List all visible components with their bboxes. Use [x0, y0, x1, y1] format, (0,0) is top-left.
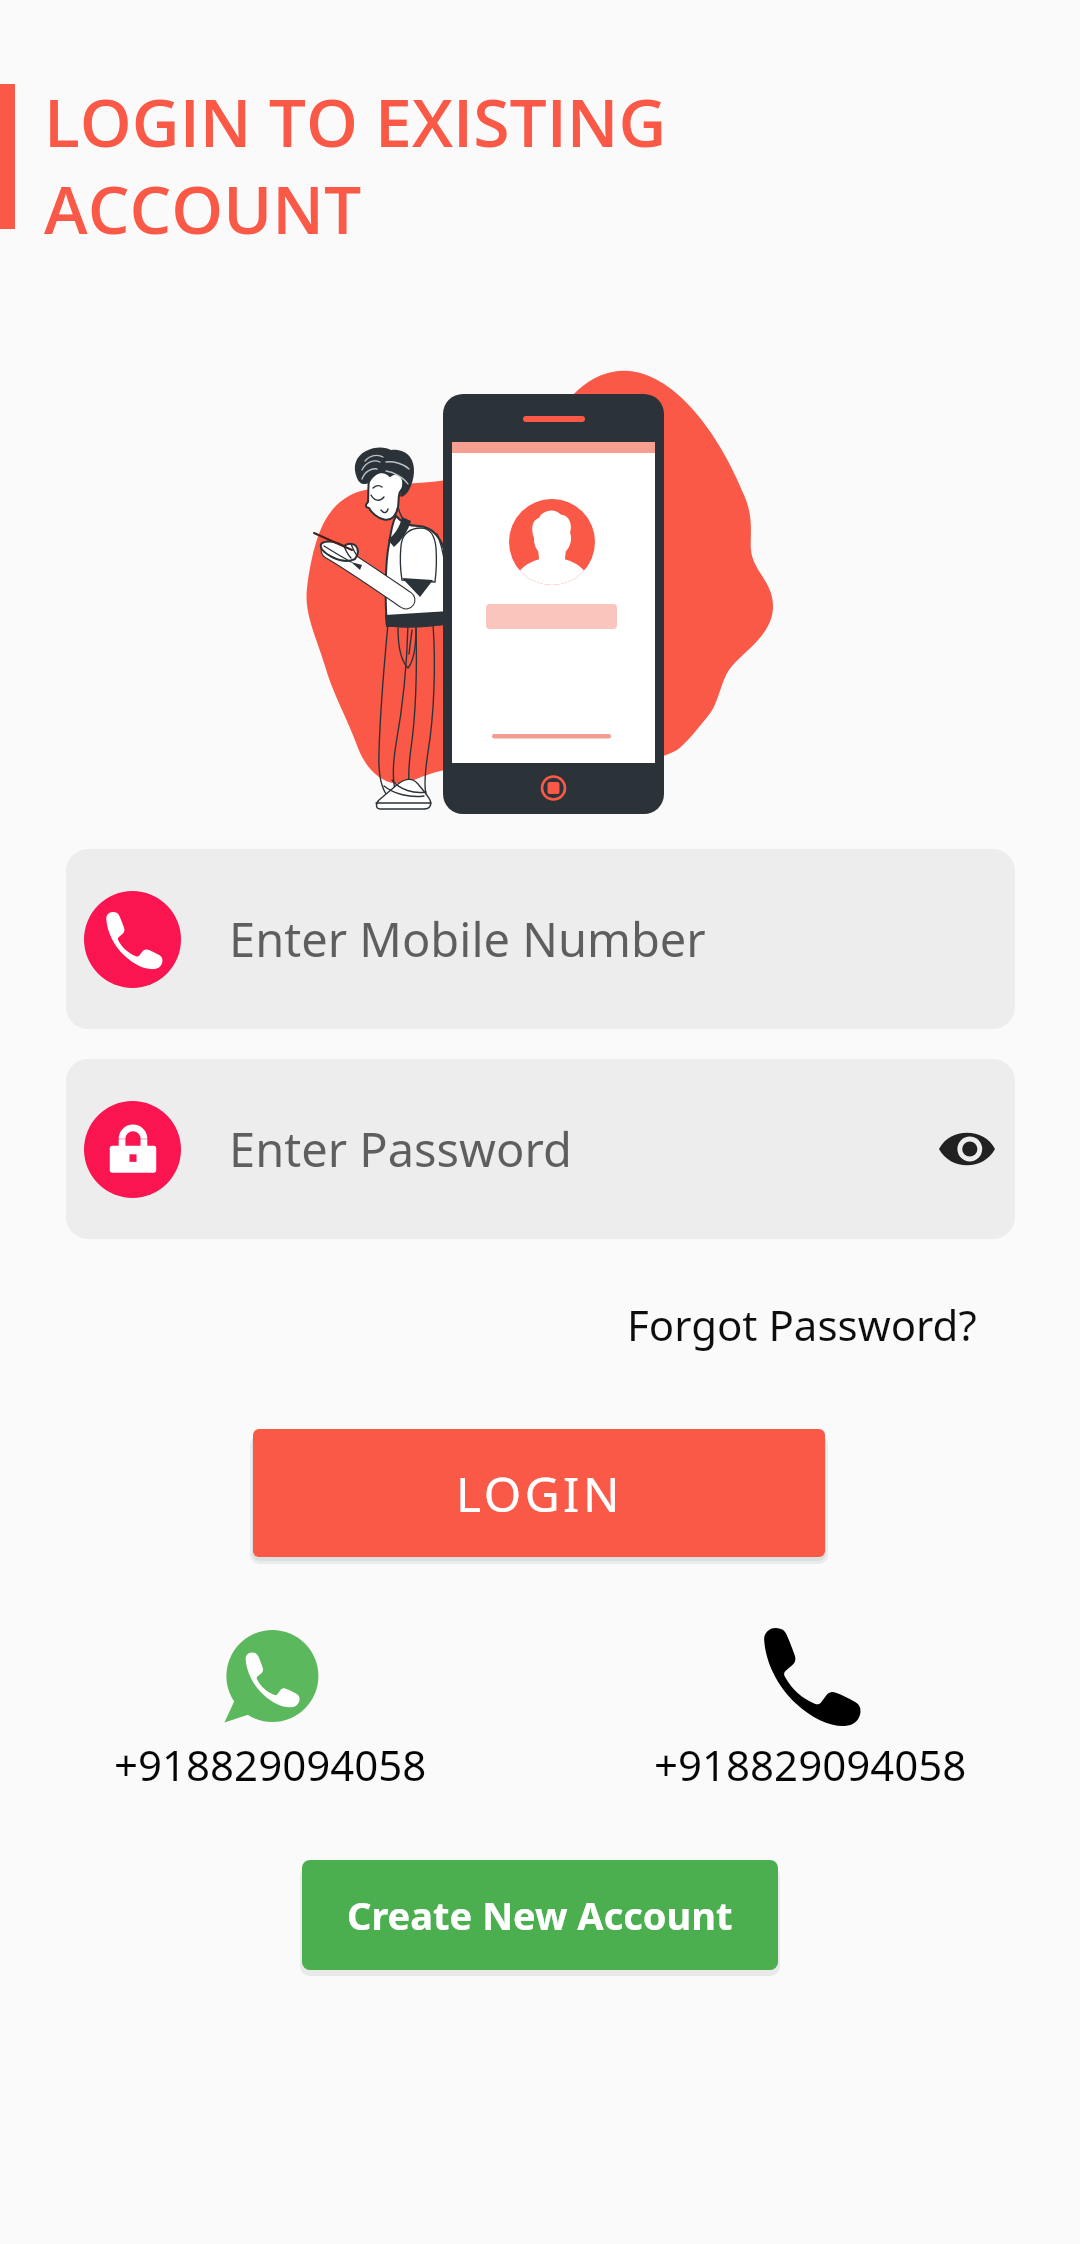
other: WhatsApp: [222, 1628, 318, 1724]
button[interactable]: LOGIN: [253, 1429, 825, 1557]
button[interactable]: Enter Mobile Number: [66, 849, 1015, 1029]
staticText: LOGIN: [456, 1461, 623, 1526]
button[interactable]: WhatsApp: [0, 1628, 540, 1793]
staticText: LOGIN TO EXISTING ACCOUNT: [44, 76, 667, 253]
other: Call: [762, 1628, 858, 1724]
staticText: Forgot Password?: [627, 1296, 977, 1353]
staticText: Create New Account: [347, 1889, 733, 1941]
staticText: +918829094058: [654, 1736, 967, 1793]
staticText: Enter Password: [229, 1117, 572, 1181]
button[interactable]: Create New Account: [302, 1860, 778, 1970]
staticText: Enter Mobile Number: [229, 907, 706, 971]
button[interactable]: Call: [540, 1628, 1080, 1793]
button[interactable]: Enter Password: [66, 1059, 1015, 1239]
button[interactable]: Show password: [927, 1109, 1007, 1189]
staticText: +918829094058: [114, 1736, 427, 1793]
button[interactable]: Forgot Password?: [627, 1296, 977, 1353]
